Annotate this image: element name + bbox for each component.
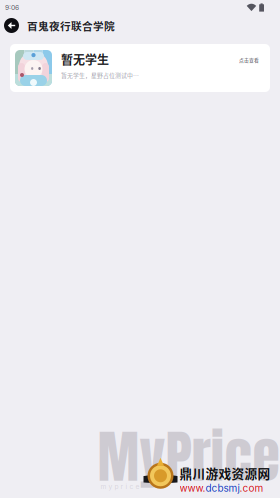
staticText: 鼎川游戏资源网 <box>179 464 270 482</box>
button[interactable]: Back <box>0 15 23 36</box>
staticText: 暂无学生 <box>61 51 109 68</box>
staticText: 点击查看 <box>239 56 259 63</box>
button[interactable]: 暂无学生 <box>10 44 270 92</box>
staticText: 暂无学生，星野占位测试中… <box>61 71 139 79</box>
staticText: 9:06 <box>5 3 19 12</box>
staticText: .com <box>239 482 263 494</box>
staticText: www. <box>179 482 205 494</box>
staticText: MyPrice <box>97 415 279 498</box>
staticText: dcbsmj <box>205 482 239 494</box>
staticText: m y p r i c e <box>100 482 139 491</box>
staticText: 百鬼夜行联合学院 <box>27 18 115 33</box>
